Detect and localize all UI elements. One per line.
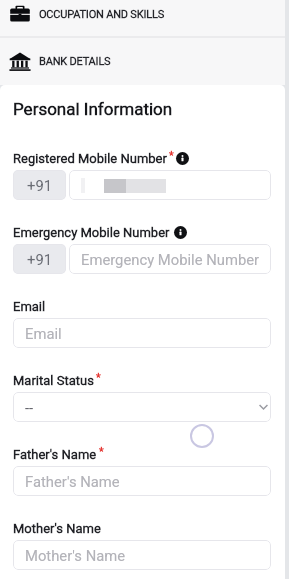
staticText: * (99, 445, 104, 458)
button[interactable]: Emergency Mobile Number (69, 244, 271, 274)
button[interactable]: +91 (13, 170, 66, 200)
other: Bank details (9, 51, 31, 73)
staticText: * (96, 371, 101, 384)
staticText: BANK DETAILS (39, 55, 111, 68)
staticText: +91 (27, 177, 53, 194)
staticText: Registered Mobile Number (13, 151, 167, 166)
staticText: Emergency Mobile Number (81, 251, 259, 268)
button[interactable]: Occupation (0, 0, 285, 28)
staticText: Mother's Name (13, 521, 101, 536)
staticText: Mother's Name (25, 547, 126, 564)
staticText: Email (25, 325, 62, 342)
staticText: * (169, 149, 174, 162)
staticText: Father's Name (13, 447, 97, 462)
button[interactable] (69, 170, 271, 200)
button[interactable]: +91 (13, 244, 66, 274)
staticText: +91 (27, 251, 53, 268)
button[interactable]: Father's Name (13, 466, 271, 496)
staticText: OCCUPATION AND SKILLS (39, 8, 164, 21)
staticText: Email (13, 299, 46, 314)
staticText: Personal Information (13, 99, 173, 119)
staticText: Emergency Mobile Number (13, 225, 170, 240)
staticText: Marital Status (13, 373, 94, 388)
button[interactable]: Email (13, 318, 271, 348)
staticText: -- (25, 399, 34, 416)
button[interactable]: Mother's Name (13, 540, 271, 570)
button[interactable]: Bank details (0, 38, 285, 85)
other: Occupation (9, 3, 31, 25)
staticText: Father's Name (25, 473, 120, 490)
button[interactable]: -- (13, 392, 271, 422)
